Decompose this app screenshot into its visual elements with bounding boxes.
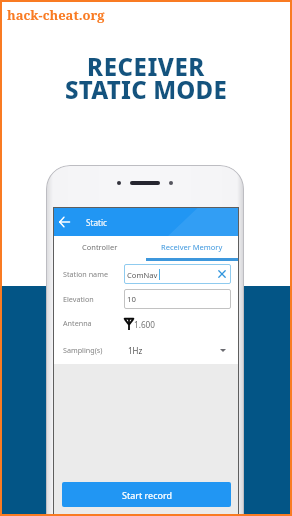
staticText: Static [86,217,108,228]
staticText: 10 [127,294,136,305]
staticText: Elevation [63,294,124,304]
button[interactable]: Controller [54,236,146,258]
button[interactable]: Back [54,208,75,236]
staticText: 1.600 [134,319,155,330]
staticText: Controller [82,242,118,252]
staticText: Sampling(s) [63,345,124,355]
button[interactable]: Receiver Memory [146,236,238,258]
staticText: ComNav [127,270,158,280]
button[interactable]: Sampling(s) [54,342,238,358]
staticText: hack-cheat.org [7,6,105,24]
staticText: Receiver Memory [161,242,223,252]
staticText: RECEIVER [87,50,205,83]
staticText: STATIC MODE [65,73,227,106]
staticText: Antenna [63,318,124,328]
staticText: Start record [122,489,172,501]
staticText: 1Hz [128,345,143,356]
staticText: Station name [63,269,124,279]
button[interactable]: Clear text [218,270,226,278]
button[interactable]: Start record [62,482,231,507]
